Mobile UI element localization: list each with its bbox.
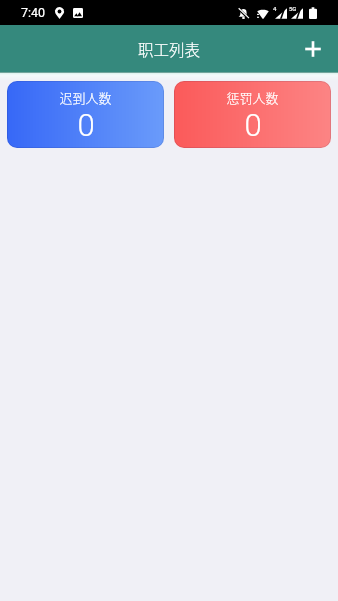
- staticText: 职工列表: [138, 38, 201, 60]
- staticText: 5G: [289, 5, 297, 12]
- button[interactable]: Add: [293, 29, 333, 69]
- staticText: 0: [77, 107, 95, 143]
- button[interactable]: 迟到人数: [7, 81, 164, 148]
- button[interactable]: 惩罚人数: [174, 81, 331, 148]
- staticText: 惩罚人数: [226, 88, 279, 107]
- staticText: 4: [273, 5, 277, 12]
- staticText: 0: [244, 107, 262, 143]
- staticText: 7:40: [21, 5, 46, 20]
- staticText: 迟到人数: [59, 88, 112, 107]
